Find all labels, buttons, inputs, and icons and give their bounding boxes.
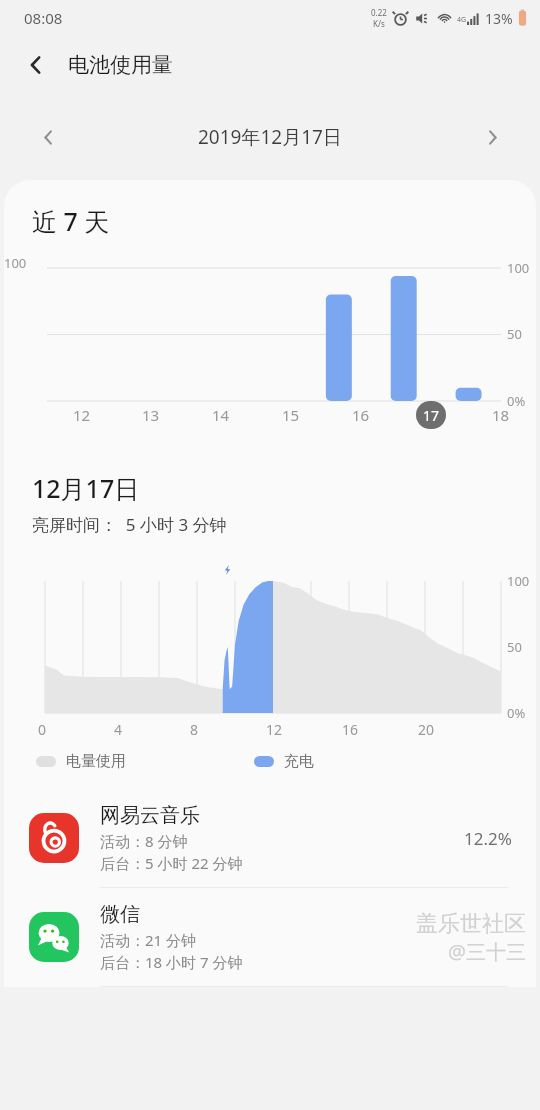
staticText: 12.2%	[464, 827, 512, 850]
staticText: @三十三	[448, 938, 526, 965]
staticText: 4	[114, 720, 123, 739]
staticText: 100	[507, 259, 530, 277]
staticText: 后台：5 小时 22 分钟	[100, 853, 243, 873]
staticText: 14	[212, 405, 230, 425]
button[interactable]: 15	[276, 401, 306, 429]
staticText: K/s	[373, 18, 385, 29]
button[interactable]: 16	[346, 401, 376, 429]
staticText: 08:08	[24, 8, 63, 28]
staticText: 电池使用量	[68, 52, 173, 78]
staticText: 充电	[284, 752, 314, 771]
staticText: 16	[342, 720, 359, 739]
button[interactable]: 14	[206, 401, 236, 429]
button[interactable]: 网易云音乐	[4, 789, 536, 887]
staticText: 后台：18 小时 7 分钟	[100, 952, 243, 972]
button[interactable]: 12	[67, 401, 97, 429]
staticText: 电量使用	[66, 752, 126, 771]
staticText: 近 7 天	[32, 204, 110, 238]
staticText: 0	[38, 720, 47, 739]
staticText: 100	[4, 254, 27, 272]
staticText: 15	[282, 405, 300, 425]
button[interactable]: 前一天	[26, 115, 70, 159]
button[interactable]: 充电	[254, 752, 314, 771]
staticText: 20	[418, 720, 435, 739]
button[interactable]: 电量使用	[36, 752, 126, 771]
staticText: 13	[142, 405, 160, 425]
staticText: 2019年12月17日	[198, 124, 342, 150]
button[interactable]: 盖乐世社区	[4, 888, 536, 986]
button[interactable]: 13	[136, 401, 166, 429]
button[interactable]: 后一天	[470, 115, 514, 159]
staticText: 12	[73, 405, 91, 425]
staticText: 18	[492, 405, 510, 425]
staticText: 12	[266, 720, 283, 739]
staticText: 0.22	[371, 7, 387, 18]
staticText: 17	[423, 406, 440, 425]
button[interactable]: 17	[416, 401, 446, 429]
staticText: 8	[190, 720, 199, 739]
staticText: 100	[507, 572, 530, 590]
staticText: 13%	[485, 9, 513, 28]
staticText: 50	[507, 325, 522, 343]
staticText: 0%	[507, 704, 526, 722]
button[interactable]: 返回	[14, 43, 58, 87]
staticText: 亮屏时间： 5 小时 3 分钟	[32, 513, 227, 536]
staticText: 活动：21 分钟	[100, 930, 197, 950]
staticText: 网易云音乐	[100, 803, 200, 828]
staticText: 12月17日	[32, 471, 140, 505]
button[interactable]: 18	[486, 401, 516, 429]
staticText: 活动：8 分钟	[100, 831, 188, 851]
staticText: 50	[507, 638, 522, 656]
staticText: 盖乐世社区	[416, 910, 526, 938]
staticText: 微信	[100, 902, 140, 927]
staticText: 16	[352, 405, 370, 425]
staticText: 0%	[507, 392, 526, 410]
staticText: 4G	[457, 15, 467, 25]
